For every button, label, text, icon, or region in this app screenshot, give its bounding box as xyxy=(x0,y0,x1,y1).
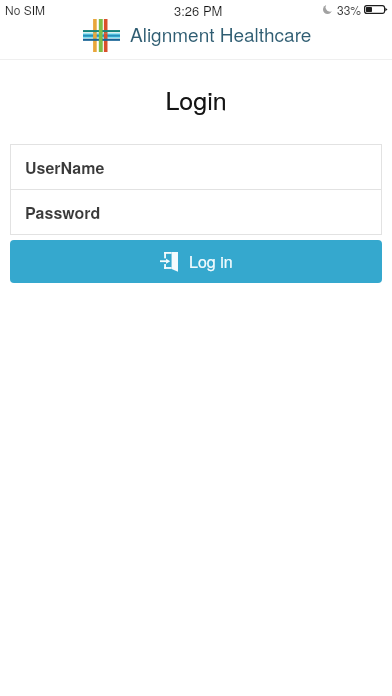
other: Log in xyxy=(160,252,178,272)
staticText: UserName xyxy=(25,156,105,179)
staticText: 33% xyxy=(337,1,362,18)
staticText: Login xyxy=(0,81,392,117)
staticText: Log in xyxy=(189,250,233,273)
button[interactable]: Password xyxy=(10,190,382,234)
staticText: 3:26 PM xyxy=(174,1,223,20)
staticText: No SIM xyxy=(5,1,46,18)
button[interactable]: Alignment Healthcare xyxy=(83,19,312,52)
staticText: Password xyxy=(25,201,101,224)
staticText: Alignment Healthcare xyxy=(130,20,312,47)
staticText: Login xyxy=(0,81,392,117)
button[interactable]: UserName xyxy=(10,145,382,189)
button[interactable]: Log in xyxy=(10,240,382,283)
